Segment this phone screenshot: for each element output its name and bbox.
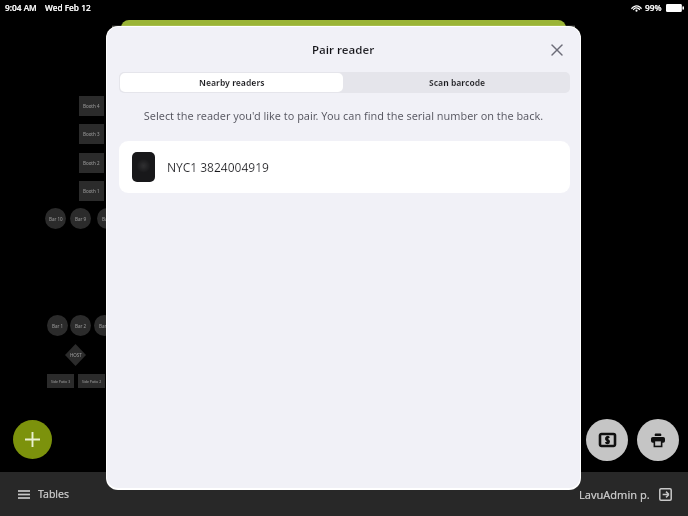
staticText: Bar 8 (102, 216, 114, 222)
staticText: Scan barcode (429, 77, 486, 89)
staticText: Booth 2 (83, 160, 100, 166)
button[interactable]: Bar 2 (70, 315, 91, 336)
button[interactable]: Bar 10 (45, 208, 66, 229)
button[interactable]: Close (547, 40, 567, 60)
button[interactable]: Booth 1 (79, 181, 104, 201)
button[interactable]: Add (13, 420, 52, 459)
staticText: HOST (70, 352, 82, 358)
button[interactable]: LavuAdmin p. (579, 472, 672, 516)
staticText: Booth 4 (83, 103, 100, 109)
staticText: Bar 3 (99, 323, 111, 329)
button[interactable]: Cash drawer (586, 419, 628, 461)
button[interactable]: Tables (18, 472, 70, 516)
staticText: Tables (38, 487, 70, 501)
staticText: Pair reader (312, 42, 375, 58)
staticText: Bar 9 (75, 216, 87, 222)
staticText: 9:04 AM (5, 2, 37, 13)
button[interactable]: Nearby readers (120, 73, 343, 92)
staticText: Booth 1 (83, 188, 100, 194)
staticText: Side Patio 2 (82, 379, 102, 384)
staticText: 99% (645, 2, 662, 13)
staticText: Bar 2 (75, 323, 87, 329)
button[interactable]: Booth 4 (79, 96, 104, 116)
staticText: Booth 3 (83, 131, 100, 137)
button[interactable]: Booth 3 (79, 124, 104, 144)
staticText: Wed Feb 12 (45, 2, 91, 13)
staticText: Nearby readers (199, 77, 265, 89)
staticText: LavuAdmin p. (579, 487, 650, 502)
button[interactable]: Side Patio 2 (78, 374, 105, 388)
button[interactable]: Bar 3 (94, 315, 115, 336)
button[interactable]: Print (637, 419, 679, 461)
staticText: Bar 1 (52, 323, 64, 329)
staticText: NYC1 3824004919 (167, 159, 269, 175)
staticText: Select the reader you'd like to pair. Yo… (119, 108, 568, 123)
button[interactable]: Scan barcode (344, 72, 570, 93)
button[interactable]: Bar 1 (47, 315, 68, 336)
button[interactable]: NYC1 3824004919 (119, 141, 570, 193)
button[interactable]: Side Patio 3 (47, 374, 74, 388)
button[interactable]: Bar 8 (97, 208, 118, 229)
staticText: Side Patio 3 (51, 379, 71, 384)
button[interactable]: HOST (65, 344, 86, 366)
button[interactable]: Booth 2 (79, 153, 104, 173)
staticText: Bar 10 (49, 216, 63, 222)
button[interactable]: Bar 9 (70, 208, 91, 229)
